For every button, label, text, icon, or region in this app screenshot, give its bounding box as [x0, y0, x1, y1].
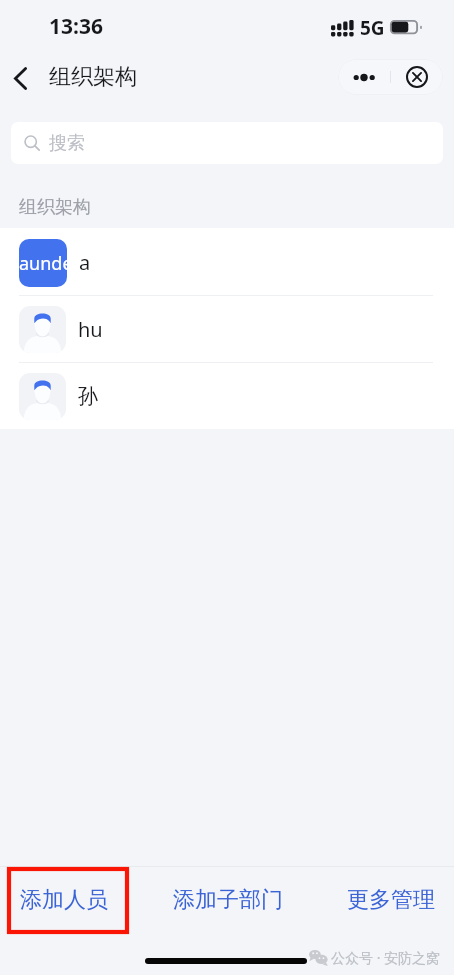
staticText: 5G [360, 15, 385, 41]
staticText: 添加人员 [20, 886, 108, 914]
button[interactable]: More options [338, 59, 390, 95]
button[interactable]: aunde [0, 228, 454, 295]
staticText: 孙 [78, 384, 98, 409]
staticText: 搜索 [49, 132, 85, 155]
button[interactable]: hu [0, 295, 454, 362]
button[interactable]: 更多管理 [326, 867, 454, 933]
staticText: hu [78, 316, 103, 343]
button[interactable]: 搜索 [11, 122, 443, 164]
staticText: 添加子部门 [173, 886, 283, 914]
staticText: 组织架构 [49, 63, 137, 91]
staticText: 13:36 [49, 12, 103, 41]
button[interactable]: Back [0, 54, 42, 102]
button[interactable]: 添加子部门 [150, 867, 306, 933]
staticText: 组织架构 [19, 196, 91, 219]
staticText: a [79, 249, 91, 276]
button[interactable]: 添加人员 [0, 867, 128, 933]
button[interactable]: Close mini program [391, 59, 443, 95]
staticText: 更多管理 [347, 886, 435, 914]
staticText: 公众号 · 安防之窝 [331, 948, 441, 967]
button[interactable]: 孙 [0, 362, 454, 429]
staticText: aunde [19, 251, 67, 276]
